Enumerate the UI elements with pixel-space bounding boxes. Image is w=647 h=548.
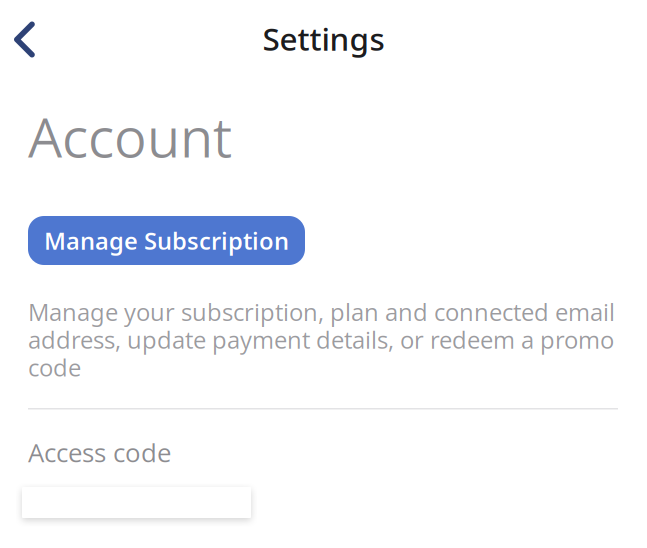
staticText: Settings bbox=[262, 18, 384, 59]
staticText: Access code bbox=[28, 435, 171, 469]
staticText: Manage your subscription, plan and conne… bbox=[28, 296, 615, 383]
button[interactable]: Manage Subscription bbox=[28, 216, 305, 265]
staticText: Manage Subscription bbox=[44, 225, 289, 256]
button[interactable]: Back bbox=[0, 4, 53, 72]
staticText: Account bbox=[28, 100, 232, 173]
